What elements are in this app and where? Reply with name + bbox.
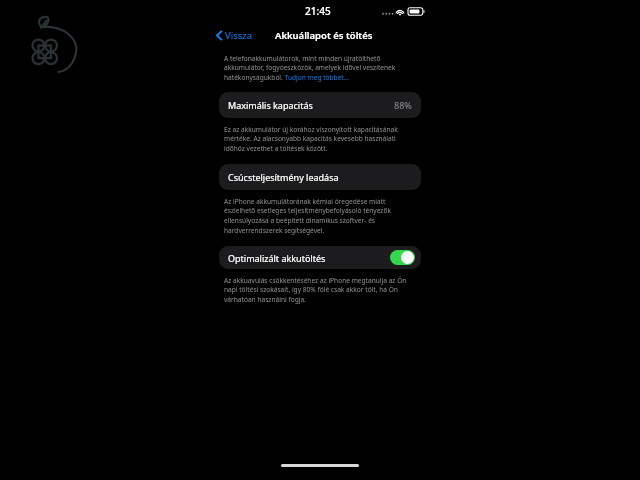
button[interactable]: Maximális kapacitás: [219, 92, 421, 118]
button[interactable]: Optimalizált akkutöltés kapcsoló: [390, 250, 415, 265]
staticText: Az akkuavulás csökkentéséhez az iPhone m…: [224, 276, 416, 304]
button[interactable]: Vissza: [215, 28, 254, 43]
staticText: Optimalizált akkutöltés: [228, 252, 326, 264]
staticText: 21:45: [305, 4, 331, 18]
staticText: A telefonakkumulátorok, mint minden újra…: [224, 54, 416, 82]
staticText: Vissza: [225, 29, 253, 42]
staticText: Csúcsteljesítmény leadása: [228, 171, 339, 183]
staticText: Akkuállapot és töltés: [275, 29, 373, 42]
staticText: Maximális kapacitás: [228, 99, 313, 111]
staticText: Ez az akkumulátor új korához viszonyítot…: [224, 125, 416, 153]
button[interactable]: Optimalizált akkutöltés: [219, 246, 421, 269]
staticText: Az iPhone akkumulátorának kémiai öregedé…: [224, 197, 416, 235]
staticText: 88%: [394, 99, 412, 111]
button[interactable]: Csúcsteljesítmény leadása: [219, 164, 421, 190]
